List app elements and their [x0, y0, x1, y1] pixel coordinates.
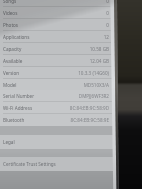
staticText: 10.3.3 (14G60): [78, 70, 109, 76]
staticText: Bluetooth: [3, 117, 25, 123]
staticText: 0: [106, 10, 109, 16]
staticText: Videos: [3, 10, 18, 16]
staticText: 8C:84:EB:9C:58:9E: [70, 117, 109, 123]
button[interactable]: Wi-Fi Address: [0, 102, 115, 114]
staticText: 8C:84:EB:9C:58:9D: [69, 105, 109, 111]
staticText: MD510X3/A: [83, 82, 109, 88]
staticText: Songs: [3, 0, 17, 4]
staticText: Applications: [3, 34, 30, 40]
staticText: Serial Number: [3, 93, 35, 99]
staticText: Available: [3, 58, 23, 64]
staticText: 12.04 GB: [89, 58, 109, 64]
staticText: Wi-Fi Address: [3, 105, 33, 111]
button[interactable]: Legal: [0, 135, 115, 149]
staticText: Capacity: [3, 46, 22, 52]
button[interactable]: Bluetooth: [0, 114, 115, 126]
staticText: Certificate Trust Settings: [3, 161, 56, 167]
button[interactable]: Videos: [0, 7, 115, 19]
button[interactable]: Serial Number: [0, 90, 115, 102]
staticText: 0: [106, 22, 109, 28]
button[interactable]: Model: [0, 79, 115, 91]
button[interactable]: Capacity: [0, 43, 115, 55]
staticText: DMPJJ6WF3R2: [78, 93, 109, 99]
staticText: Model: [3, 82, 17, 88]
staticText: Legal: [3, 139, 15, 145]
button[interactable]: Applications: [0, 31, 115, 43]
button[interactable]: Photos: [0, 19, 115, 31]
staticText: 0: [106, 0, 109, 4]
button[interactable]: Certificate Trust Settings: [0, 157, 115, 171]
button[interactable]: Available: [0, 55, 115, 67]
staticText: Version: [3, 70, 20, 76]
staticText: Photos: [3, 22, 19, 28]
staticText: 10.58 GB: [89, 46, 109, 52]
button[interactable]: Version: [0, 67, 115, 79]
staticText: 12: [103, 34, 109, 40]
button[interactable]: Songs: [0, 0, 115, 7]
